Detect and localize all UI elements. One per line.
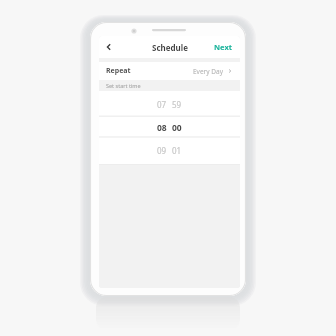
staticText: Set start time: [106, 82, 141, 89]
staticText: Next: [214, 42, 233, 52]
staticText: 01: [172, 145, 182, 156]
button[interactable]: 08: [99, 117, 240, 138]
button[interactable]: 09: [99, 138, 240, 163]
staticText: Repeat: [106, 66, 131, 76]
staticText: Every Day: [193, 67, 223, 76]
staticText: 09: [157, 145, 167, 156]
staticText: 07: [157, 99, 167, 110]
staticText: Schedule: [152, 42, 188, 53]
button[interactable]: Back: [99, 36, 119, 58]
staticText: 08: [157, 122, 167, 134]
button[interactable]: Next: [207, 36, 240, 58]
staticText: 59: [172, 99, 182, 110]
staticText: 00: [172, 122, 182, 134]
button[interactable]: Repeat: [99, 62, 240, 80]
button[interactable]: 07: [99, 92, 240, 117]
